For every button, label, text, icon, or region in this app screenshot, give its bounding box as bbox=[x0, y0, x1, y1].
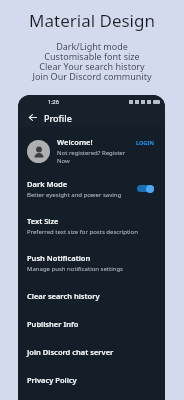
button[interactable]: Welcome! bbox=[18, 134, 165, 168]
staticText: Profile bbox=[44, 112, 72, 124]
button[interactable]: LOGIN bbox=[134, 137, 156, 148]
button[interactable]: Dark Mode bbox=[18, 174, 165, 204]
staticText: Dark/Light mode Customisable font size C… bbox=[32, 40, 152, 83]
staticText: Manage push notification settings bbox=[27, 265, 123, 273]
staticText: Join Discord chat server bbox=[27, 347, 114, 357]
staticText: Not registered? Register Now bbox=[57, 149, 134, 165]
staticText: Text Size bbox=[27, 216, 59, 226]
staticText: Publisher Info bbox=[27, 319, 79, 329]
button[interactable]: Push Notification bbox=[18, 248, 165, 278]
staticText: Better eyesight and power saving bbox=[27, 191, 122, 199]
staticText: Material Design bbox=[29, 9, 155, 32]
staticText: Dark Mode bbox=[27, 179, 68, 189]
button[interactable]: Back bbox=[26, 111, 39, 124]
staticText: Push Notification bbox=[27, 253, 91, 263]
button[interactable]: Privacy Policy bbox=[18, 370, 165, 390]
staticText: LOGIN bbox=[136, 139, 154, 146]
staticText: 1:26 bbox=[48, 98, 59, 105]
button[interactable]: Publisher Info bbox=[18, 314, 165, 334]
staticText: Welcome! bbox=[57, 137, 93, 147]
staticText: Clear search history bbox=[27, 291, 100, 301]
button[interactable]: Toggle dark mode bbox=[135, 183, 156, 195]
button[interactable]: Join Discord chat server bbox=[18, 342, 165, 362]
button[interactable]: Text Size bbox=[18, 211, 165, 241]
staticText: Preferred text size for posts descriptio… bbox=[27, 228, 138, 236]
staticText: Privacy Policy bbox=[27, 375, 77, 385]
button[interactable]: Clear search history bbox=[18, 286, 165, 306]
